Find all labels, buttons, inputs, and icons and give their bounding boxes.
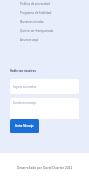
button[interactable]: Enviar Mensaje: [10, 119, 39, 133]
button[interactable]: Escriba tu mensaje: [10, 98, 79, 119]
button[interactable]: Nuestras tiendas: [0, 17, 89, 26]
staticText: Anuncie aquí: [20, 38, 39, 42]
staticText: Nuestras tiendas: [20, 20, 44, 24]
staticText: Quiero ser franquiciado: [20, 29, 54, 33]
staticText: Enviar Mensaje: [15, 124, 34, 128]
staticText: Escriba tu mensaje: [13, 101, 36, 105]
staticText: Ingrese su nombre: [13, 85, 37, 89]
button[interactable]: Política de privacidad: [0, 0, 89, 8]
staticText: Hable con nosotros: [10, 69, 36, 73]
staticText: Desarrollado por David Duartez 2022: [0, 166, 89, 170]
button[interactable]: Anuncie aquí: [0, 35, 89, 44]
button[interactable]: Programa de fidelidad: [0, 8, 89, 17]
staticText: Política de privacidad: [20, 2, 50, 6]
button[interactable]: Quiero ser franquiciado: [0, 26, 89, 35]
button[interactable]: Ingrese su nombre: [10, 79, 79, 94]
staticText: Programa de fidelidad: [20, 11, 52, 15]
